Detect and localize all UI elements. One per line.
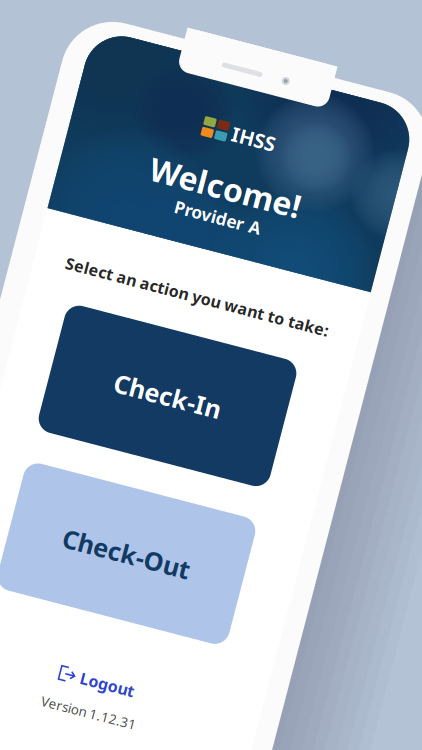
button[interactable]: Logout (0, 631, 271, 649)
staticText: Check-Out (81, 509, 212, 542)
staticText: Provider A (181, 164, 270, 187)
staticText: IHSS (239, 80, 284, 107)
staticText: Version 1.12.31 (47, 662, 145, 680)
button[interactable]: Check-In (68, 302, 307, 433)
staticText: Check-In (133, 351, 243, 385)
button[interactable]: Check-Out (27, 460, 266, 591)
staticText: Select an action you want to take: (69, 244, 340, 265)
staticText: Welcome! (158, 124, 313, 167)
